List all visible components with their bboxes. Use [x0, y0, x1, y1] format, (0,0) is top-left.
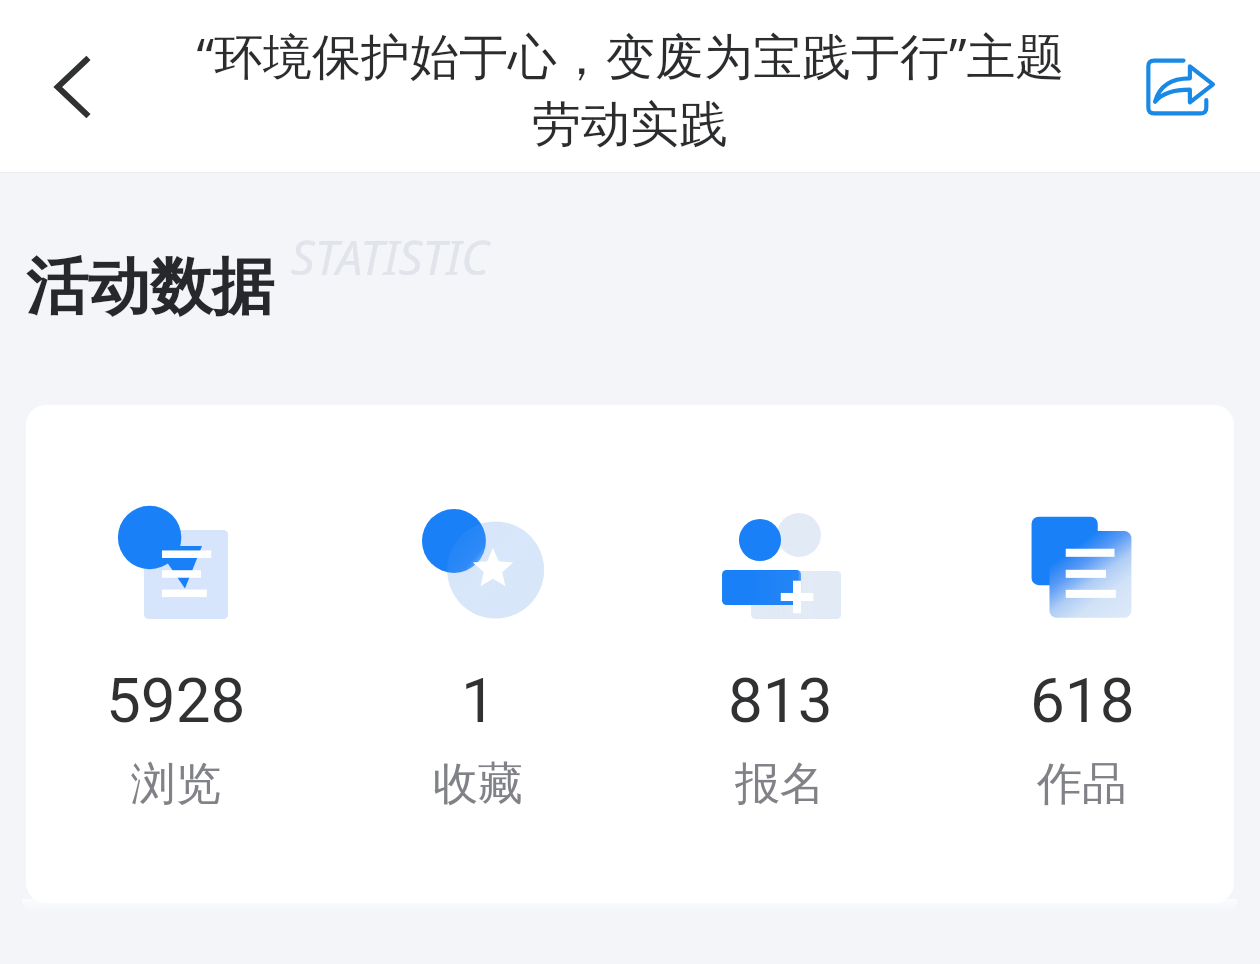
staticText: 813 [728, 664, 833, 737]
button[interactable]: 618 [982, 490, 1182, 813]
staticText: 报名 [735, 756, 825, 813]
staticText: STATISTIC [291, 225, 489, 289]
staticText: 作品 [1037, 756, 1127, 813]
staticText: 浏览 [131, 756, 221, 813]
staticText: 劳动实践 [532, 94, 728, 156]
staticText: “环境保护始于心，变废为宝践于行”主题 [196, 22, 1065, 89]
staticText: 5928 [106, 664, 246, 737]
staticText: 618 [1030, 664, 1135, 737]
button[interactable]: 5928 [76, 490, 276, 813]
button[interactable]: 813 [680, 490, 880, 813]
staticText: 活动数据 [26, 248, 274, 326]
button[interactable]: 1 [378, 490, 578, 813]
staticText: 收藏 [433, 756, 523, 813]
button[interactable]: Share [1146, 42, 1236, 132]
staticText: 1 [461, 664, 496, 737]
button[interactable]: Back [28, 43, 116, 131]
